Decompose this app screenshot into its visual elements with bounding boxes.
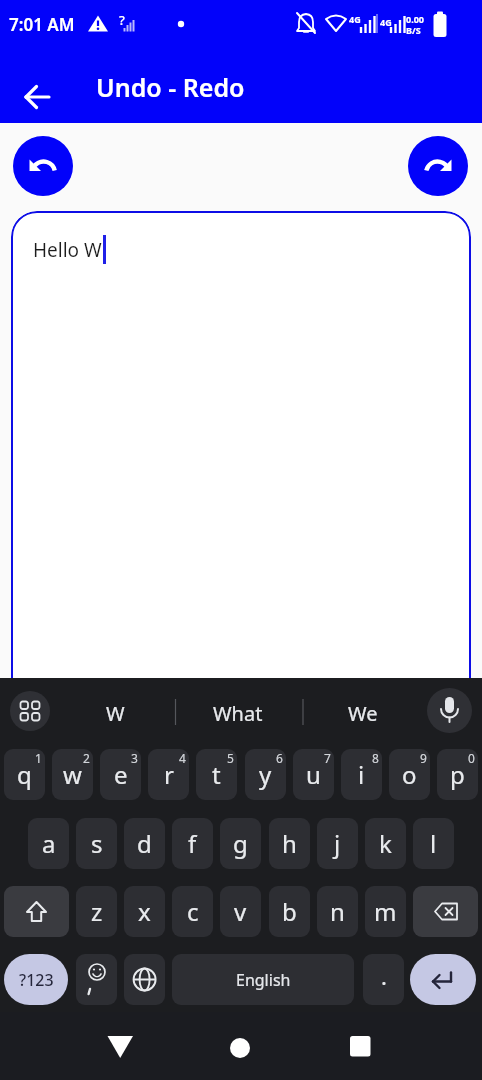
staticText: 0 — [468, 750, 475, 766]
button[interactable] — [4, 886, 69, 937]
button[interactable]: j — [317, 818, 358, 869]
button[interactable]: q — [4, 749, 45, 800]
staticText: p — [450, 758, 465, 791]
button[interactable] — [413, 886, 478, 937]
staticText: t — [212, 758, 221, 791]
button[interactable]: g — [220, 818, 261, 869]
staticText: 8 — [372, 750, 379, 766]
staticText: 4G — [349, 13, 361, 25]
button[interactable]: v — [220, 886, 261, 937]
staticText: 0.00 B/S — [406, 13, 424, 36]
staticText: e — [114, 758, 128, 791]
staticText: i — [358, 758, 365, 791]
staticText: n — [330, 895, 345, 928]
button[interactable]: f — [172, 818, 213, 869]
staticText: d — [137, 827, 152, 860]
button[interactable]: What — [183, 678, 293, 749]
button[interactable]: k — [365, 818, 406, 869]
staticText: ?123 — [19, 969, 54, 991]
staticText: f — [188, 827, 197, 860]
staticText: English — [236, 969, 291, 991]
button[interactable]: y — [245, 749, 286, 800]
staticText: k — [379, 827, 392, 860]
staticText: y — [259, 758, 272, 791]
button[interactable]: h — [269, 818, 310, 869]
staticText: Undo - Redo — [96, 70, 245, 104]
staticText: v — [234, 895, 247, 928]
staticText: j — [334, 827, 341, 860]
staticText: m — [374, 895, 397, 928]
staticText: ? — [119, 11, 125, 29]
staticText: l — [430, 827, 437, 860]
staticText: q — [17, 758, 32, 791]
staticText: 7 — [324, 750, 331, 766]
staticText: 6 — [276, 750, 283, 766]
button[interactable]: Hello W — [11, 211, 471, 711]
staticText: 5 — [227, 750, 234, 766]
staticText: s — [91, 827, 103, 860]
staticText: c — [187, 895, 199, 928]
button[interactable] — [427, 688, 472, 733]
staticText: a — [42, 827, 56, 860]
button[interactable]: e — [100, 749, 141, 800]
button[interactable] — [124, 954, 165, 1005]
button[interactable]: d — [124, 818, 165, 869]
button[interactable]: o — [389, 749, 430, 800]
button[interactable]: W — [60, 678, 170, 749]
button[interactable] — [408, 136, 468, 196]
staticText: r — [164, 758, 174, 791]
staticText: 2 — [83, 750, 90, 766]
button[interactable] — [96, 1022, 144, 1070]
button[interactable]: w — [52, 749, 93, 800]
button[interactable]: a — [28, 818, 69, 869]
button[interactable]: r — [148, 749, 189, 800]
button[interactable] — [10, 691, 50, 731]
button[interactable]: . — [363, 954, 404, 1005]
staticText: 7:01 AM — [9, 13, 75, 36]
button[interactable] — [16, 75, 60, 119]
button[interactable]: ?123 — [4, 954, 68, 1005]
staticText: 9 — [420, 750, 427, 766]
staticText: 4G — [380, 16, 392, 28]
button[interactable]: z — [76, 886, 117, 937]
button[interactable]: b — [269, 886, 310, 937]
staticText: g — [233, 827, 248, 860]
staticText: o — [402, 758, 417, 791]
button[interactable] — [336, 1022, 384, 1070]
staticText: What — [213, 700, 263, 727]
staticText: w — [63, 758, 82, 791]
staticText: b — [282, 895, 297, 928]
button[interactable] — [216, 1022, 264, 1070]
staticText: W — [106, 700, 125, 727]
button[interactable]: s — [76, 818, 117, 869]
staticText: 3 — [131, 750, 138, 766]
staticText: We — [348, 700, 378, 727]
staticText: h — [282, 827, 297, 860]
staticText: x — [138, 895, 151, 928]
staticText: 4 — [179, 750, 186, 766]
staticText: z — [91, 895, 103, 928]
button[interactable]: x — [124, 886, 165, 937]
button[interactable] — [76, 954, 117, 1005]
button[interactable]: i — [341, 749, 382, 800]
button[interactable]: We — [308, 678, 418, 749]
staticText: u — [306, 758, 321, 791]
button[interactable]: u — [293, 749, 334, 800]
button[interactable] — [13, 136, 73, 196]
button[interactable]: n — [317, 886, 358, 937]
button[interactable]: c — [172, 886, 213, 937]
button[interactable]: t — [196, 749, 237, 800]
staticText: . — [381, 961, 387, 991]
button[interactable]: l — [413, 818, 454, 869]
button[interactable]: English — [172, 954, 354, 1005]
button[interactable]: m — [365, 886, 406, 937]
staticText: Hello W — [33, 237, 102, 263]
staticText: 1 — [35, 750, 42, 766]
button[interactable] — [410, 954, 476, 1005]
button[interactable]: p — [437, 749, 478, 800]
